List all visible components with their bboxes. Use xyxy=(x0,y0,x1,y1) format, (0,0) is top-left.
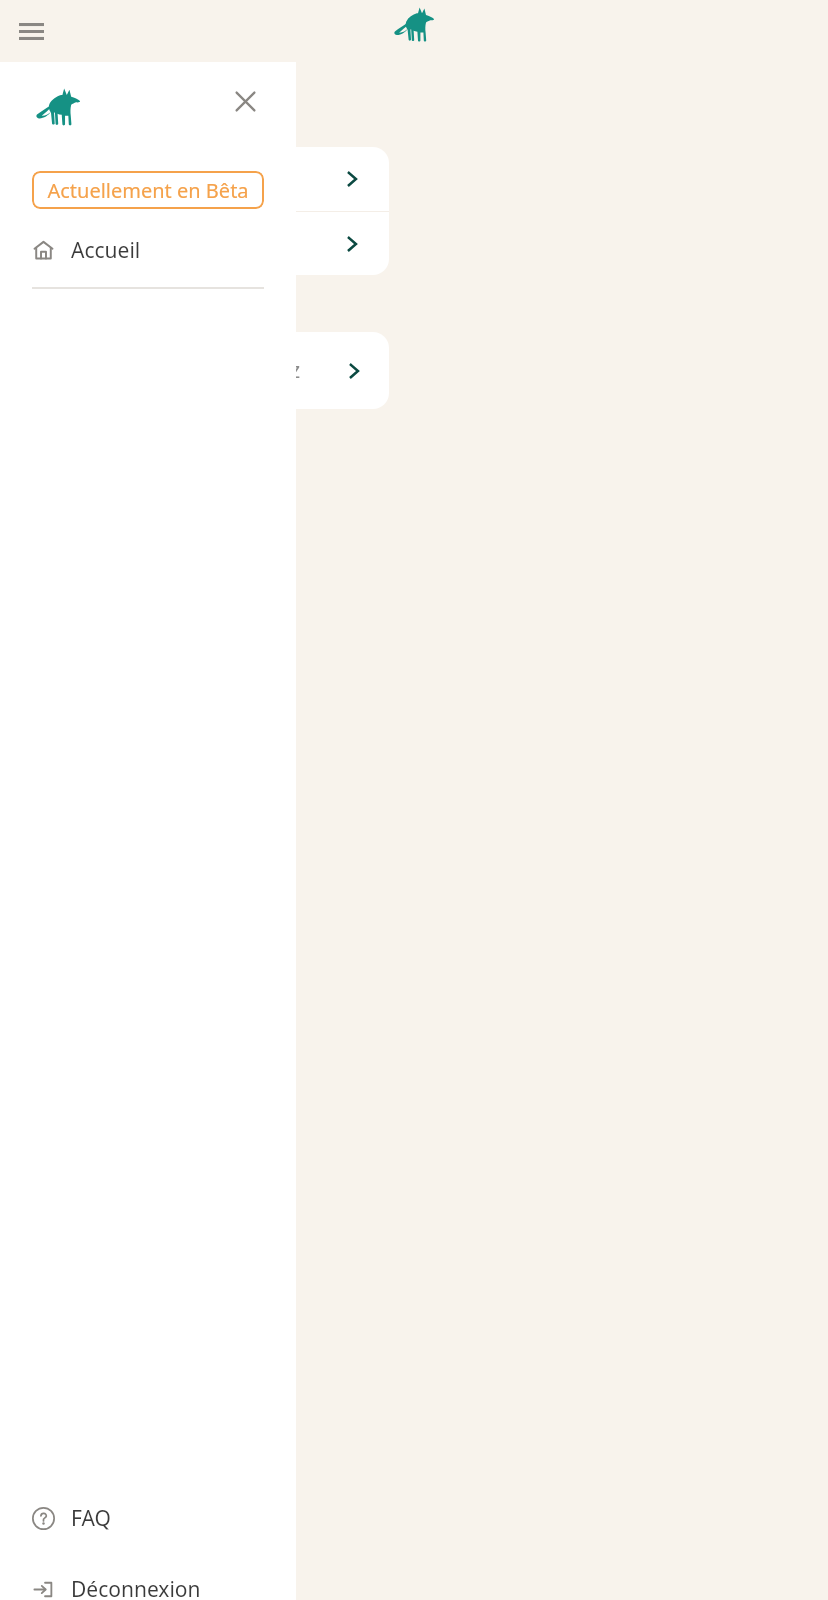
button[interactable]: Open menu xyxy=(12,12,50,50)
button[interactable] xyxy=(25,212,389,275)
button[interactable]: Accueil xyxy=(10,226,286,275)
button[interactable]: vez xyxy=(25,332,389,409)
button[interactable]: FAQ xyxy=(10,1494,286,1543)
staticText: Actuellement en Bêta xyxy=(47,177,249,204)
staticText: Accueil xyxy=(71,236,141,265)
staticText: Déconnexion xyxy=(71,1575,201,1600)
button[interactable]: Actuellement en Bêta xyxy=(32,171,264,209)
staticText: FAQ xyxy=(71,1504,111,1533)
button[interactable]: Déconnexion xyxy=(10,1565,286,1600)
staticText: vez xyxy=(268,356,301,385)
button[interactable]: Close menu xyxy=(225,81,265,121)
button[interactable] xyxy=(25,147,389,211)
